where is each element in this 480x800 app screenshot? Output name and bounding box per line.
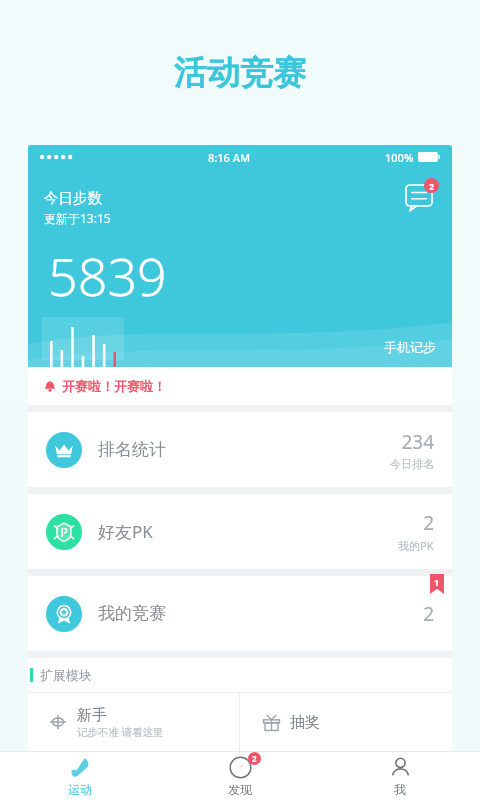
staticText: 今日步数 <box>44 189 102 207</box>
staticText: 开赛啦！开赛啦！ <box>62 378 166 394</box>
staticText: 发现 <box>228 782 252 797</box>
staticText: 5839 <box>48 240 167 311</box>
staticText: 运动 <box>68 782 92 797</box>
staticText: 234 <box>401 429 434 455</box>
staticText: 记步不准 请看这里 <box>77 725 164 739</box>
staticText: 活动竞赛 <box>174 52 306 94</box>
staticText: 我的竞赛 <box>98 603 166 624</box>
staticText: 2 <box>429 180 435 192</box>
staticText: 我 <box>394 782 406 797</box>
button[interactable]: 新手 <box>28 693 239 751</box>
staticText: 1 <box>434 576 440 588</box>
button[interactable]: 开赛啦！开赛啦！ <box>28 367 452 405</box>
staticText: 100% <box>385 150 414 165</box>
staticText: 扩展模块 <box>40 667 92 683</box>
staticText: 新手 <box>77 706 107 725</box>
staticText: 抽奖 <box>290 713 320 732</box>
staticText: 今日排名 <box>390 457 434 471</box>
staticText: 好友PK <box>98 520 153 543</box>
button[interactable]: 我的竞赛 <box>28 576 452 651</box>
staticText: 手机记步 <box>384 339 436 355</box>
button[interactable]: Messages <box>402 181 436 215</box>
staticText: 8:16 AM <box>208 150 251 165</box>
button[interactable]: 运动 <box>0 752 160 800</box>
button[interactable]: 抽奖 <box>240 693 452 751</box>
button[interactable]: 排名统计 <box>28 412 452 487</box>
staticText: 2 <box>423 510 434 536</box>
button[interactable]: 2 <box>160 752 320 800</box>
staticText: 更新于13:15 <box>44 210 111 226</box>
button[interactable]: 我 <box>320 752 480 800</box>
staticText: 2 <box>252 753 257 764</box>
staticText: 排名统计 <box>98 439 166 460</box>
staticText: 2 <box>423 601 434 627</box>
staticText: 我的PK <box>398 538 434 553</box>
button[interactable]: 好友PK <box>28 494 452 569</box>
